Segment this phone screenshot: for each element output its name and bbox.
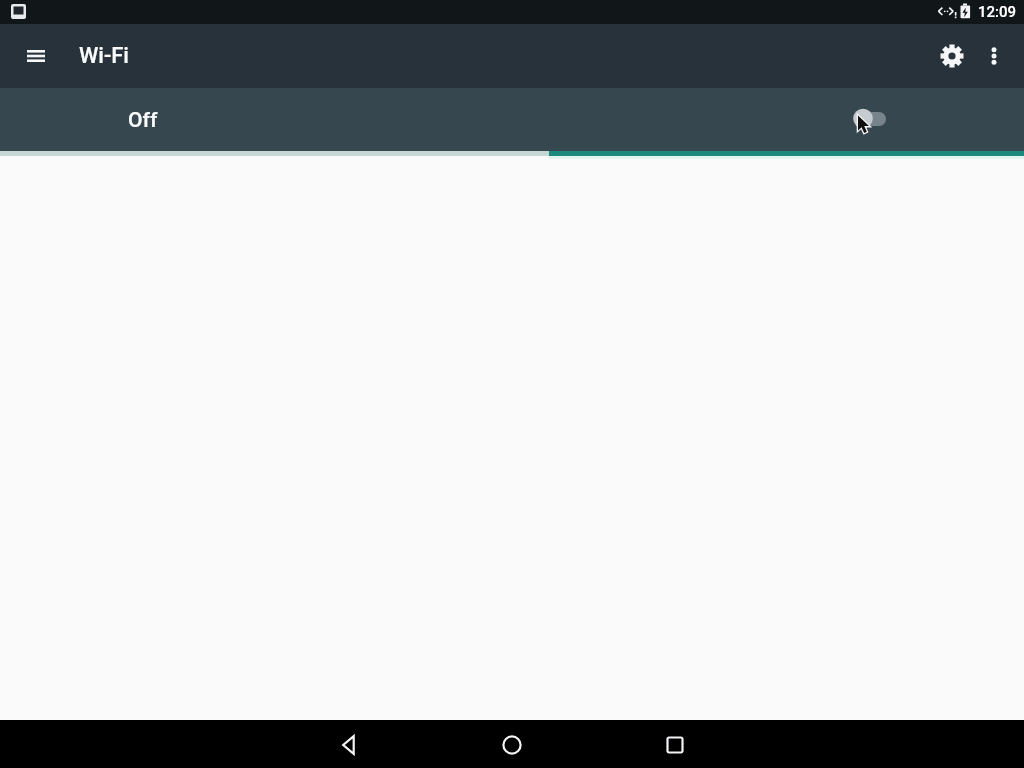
staticText: 12:09 — [978, 3, 1017, 21]
staticText: Wi-Fi — [79, 43, 129, 69]
staticText: Off — [128, 108, 158, 133]
button[interactable] — [970, 32, 1018, 80]
button[interactable] — [488, 721, 536, 768]
button[interactable] — [651, 721, 699, 768]
button[interactable] — [326, 721, 374, 768]
button[interactable]: Off — [0, 88, 1024, 151]
button[interactable] — [12, 32, 60, 80]
button[interactable] — [928, 32, 976, 80]
